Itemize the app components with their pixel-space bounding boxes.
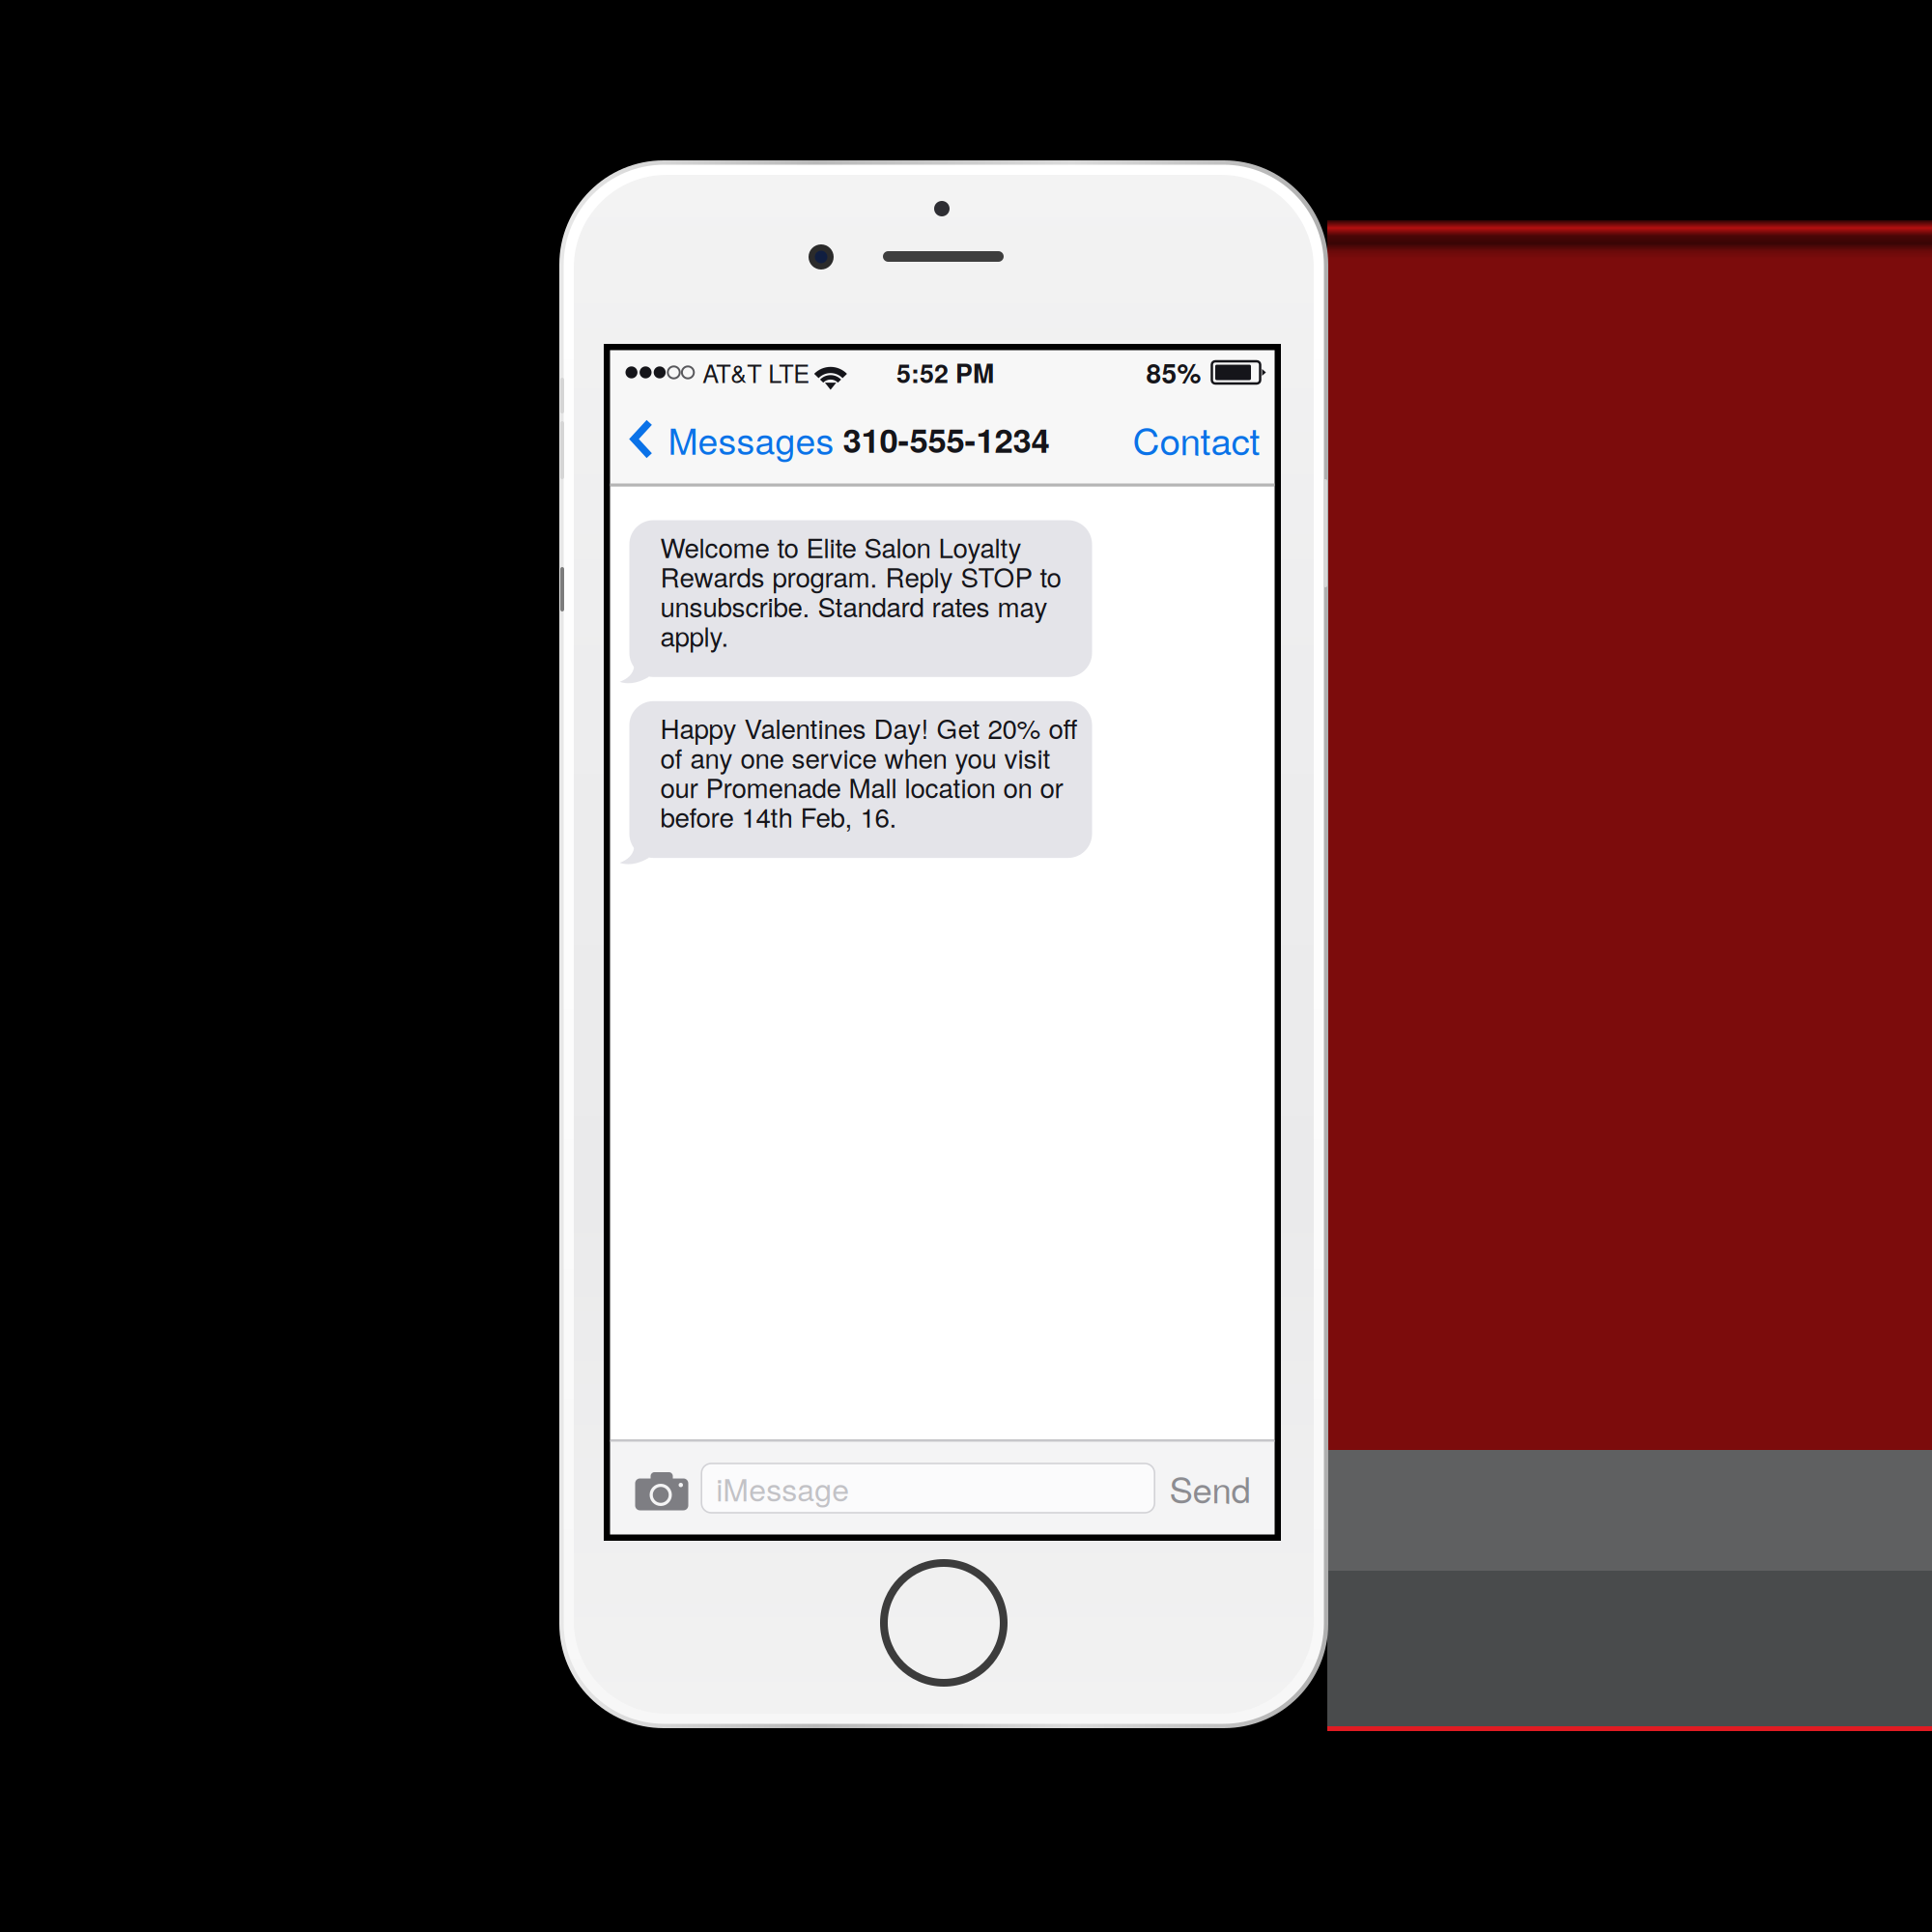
button[interactable]: iMessage xyxy=(702,1463,1155,1513)
button[interactable]: Contact xyxy=(1133,406,1260,472)
staticText: 310-555-1234 xyxy=(843,415,1050,463)
staticText: 5:52 PM xyxy=(896,354,994,391)
button[interactable]: Take photo xyxy=(635,1469,688,1507)
staticText: Contact xyxy=(1133,412,1260,466)
staticText: Happy Valentines Day! Get 20% off of any… xyxy=(660,713,1078,831)
staticText: 85% xyxy=(1146,353,1201,392)
button[interactable]: Send xyxy=(1169,1463,1250,1513)
staticText: AT&T LTE xyxy=(703,355,810,390)
staticText: Welcome to Elite Salon Loyalty Rewards p… xyxy=(660,532,1061,650)
staticText: iMessage xyxy=(716,1466,849,1510)
button[interactable]: Messages xyxy=(630,407,834,471)
staticText: Send xyxy=(1169,1463,1250,1513)
staticText: Messages xyxy=(668,413,834,465)
